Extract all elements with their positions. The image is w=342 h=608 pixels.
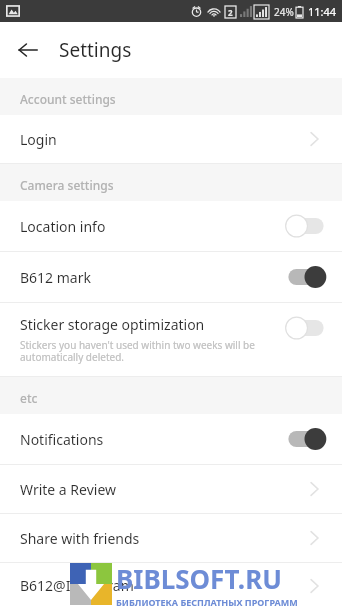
button[interactable]: Write a Review (0, 465, 342, 513)
staticText: Account settings (20, 91, 116, 107)
staticText: Sticker storage optimization (20, 315, 205, 334)
button[interactable]: Open (302, 574, 326, 598)
staticText: B612 mark (20, 268, 91, 287)
button[interactable]: Open (302, 526, 326, 550)
staticText: 24% (274, 5, 294, 19)
button[interactable]: On (284, 426, 328, 452)
staticText: БИБЛИОТЕКА БЕСПЛАТНЫХ ПРОГРАММ (116, 596, 298, 608)
button[interactable]: Sticker storage optimization (0, 303, 342, 376)
button[interactable]: Open (302, 477, 326, 501)
staticText: etc (20, 390, 38, 406)
staticText: Share with friends (20, 529, 140, 548)
button[interactable]: Back (8, 30, 48, 70)
button[interactable]: Login (0, 115, 342, 163)
staticText: Login (20, 130, 57, 149)
staticText: B612@Instagram (20, 576, 134, 595)
staticText: BIBLSOFT.RU (116, 561, 282, 596)
staticText: 2 (228, 7, 233, 18)
button[interactable]: B612 mark (0, 252, 342, 302)
button[interactable]: Location info (0, 201, 342, 251)
button[interactable]: B612@Instagram (0, 563, 342, 608)
button[interactable]: Off (284, 315, 328, 341)
staticText: Notifications (20, 430, 104, 449)
staticText: 11:44 (308, 4, 337, 19)
button[interactable]: Off (284, 213, 328, 239)
staticText: Write a Review (20, 480, 117, 499)
button[interactable]: On (284, 264, 328, 290)
staticText: Settings (59, 37, 132, 63)
staticText: Camera settings (20, 177, 114, 193)
button[interactable]: Open (302, 127, 326, 151)
staticText: Location info (20, 217, 106, 236)
button[interactable]: Share with friends (0, 514, 342, 562)
staticText: Stickers you haven't used within two wee… (20, 338, 255, 364)
button[interactable]: Notifications (0, 414, 342, 464)
